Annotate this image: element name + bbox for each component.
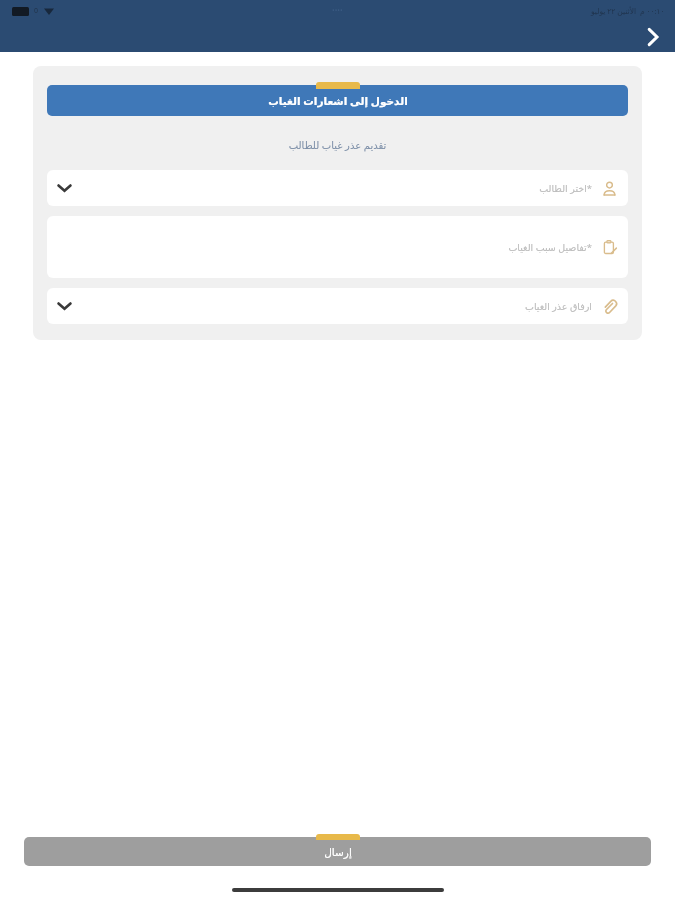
staticText: ٠٠:١٠ م الأثنين ٢٢ يوليو	[591, 6, 665, 16]
button[interactable]: اختر الطالب*	[47, 170, 628, 206]
button[interactable]: الدخول إلى اشعارات الغياب	[47, 85, 628, 116]
button[interactable]: ارفاق عذر الغياب	[47, 288, 628, 324]
staticText: اختر الطالب*	[539, 182, 592, 195]
button[interactable]: تفاصيل سبب الغياب*	[47, 216, 628, 278]
staticText: 0	[34, 6, 39, 16]
staticText: إرسال	[324, 846, 352, 858]
button[interactable]: رجوع	[635, 22, 669, 52]
staticText: ارفاق عذر الغياب	[524, 300, 592, 313]
button[interactable]: إرسال	[24, 837, 651, 866]
staticText: الدخول إلى اشعارات الغياب	[268, 94, 408, 108]
staticText: تقديم عذر غياب للطالب	[47, 138, 628, 152]
staticText: ••••	[332, 6, 343, 16]
staticText: تفاصيل سبب الغياب*	[508, 241, 592, 254]
